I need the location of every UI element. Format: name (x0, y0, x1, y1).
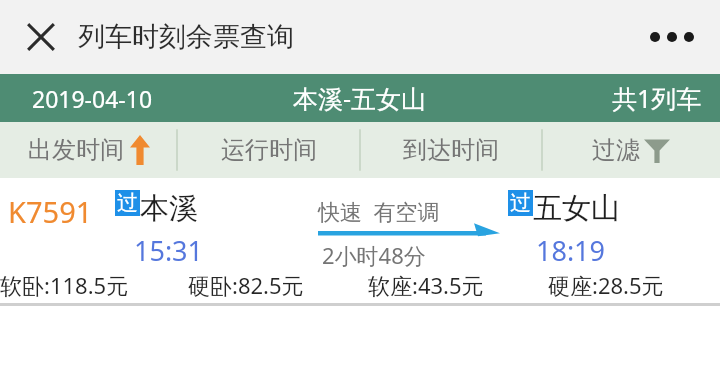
button[interactable]: 到达时间 (360, 122, 542, 178)
button[interactable]: K7591 (0, 178, 720, 303)
button[interactable]: 出发时间 (0, 122, 177, 178)
staticText: 列车时刻余票查询 (78, 20, 294, 54)
staticText: 硬座:28.5元 (548, 270, 664, 300)
button[interactable]: 运行时间 (177, 122, 360, 178)
staticText: 过 (117, 190, 138, 216)
staticText: 本溪 (140, 190, 198, 227)
button[interactable]: Close (18, 14, 64, 60)
staticText: 过 (510, 190, 531, 216)
staticText: 快速 有空调 (318, 196, 440, 226)
button[interactable]: 过滤 (542, 122, 720, 178)
staticText: 五女山 (533, 190, 620, 227)
staticText: 2小时48分 (322, 240, 426, 270)
staticText: 出发时间 (28, 135, 124, 165)
staticText: 到达时间 (403, 135, 499, 165)
staticText: 2019-04-10 (32, 83, 153, 114)
staticText: K7591 (8, 192, 93, 231)
staticText: 运行时间 (221, 135, 317, 165)
staticText: 本溪-五女山 (293, 81, 427, 115)
button[interactable]: More options (644, 14, 700, 60)
staticText: 硬卧:82.5元 (188, 270, 304, 300)
staticText: 15:31 (134, 232, 204, 269)
staticText: 软卧:118.5元 (0, 270, 129, 300)
staticText: 共1列车 (612, 81, 702, 115)
staticText: 18:19 (536, 232, 606, 269)
staticText: 软座:43.5元 (368, 270, 484, 300)
staticText: 过滤 (592, 135, 640, 165)
